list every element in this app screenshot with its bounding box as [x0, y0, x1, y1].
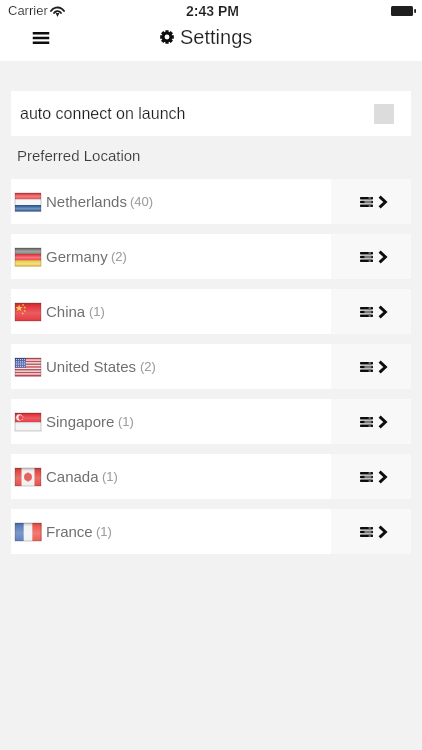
staticText: Germany — [46, 248, 108, 265]
staticText: Netherlands — [46, 193, 127, 210]
button[interactable]: auto connect on launch — [11, 91, 411, 136]
button[interactable]: Show servers in France — [331, 509, 411, 554]
staticText: Preferred Location — [17, 147, 141, 164]
staticText: Carrier — [8, 3, 48, 18]
button[interactable]: Menu — [18, 21, 64, 55]
staticText: France — [46, 523, 93, 540]
button[interactable]: Show servers in Netherlands — [331, 179, 411, 224]
staticText: (1) — [118, 414, 134, 429]
staticText: Singapore — [46, 413, 115, 430]
staticText: Canada — [46, 468, 99, 485]
button[interactable]: Singapore — [11, 399, 331, 444]
button[interactable]: United States — [11, 344, 331, 389]
button[interactable]: China — [11, 289, 331, 334]
staticText: (2) — [140, 359, 156, 374]
staticText: (2) — [111, 249, 127, 264]
staticText: (1) — [102, 469, 118, 484]
staticText: (1) — [89, 304, 105, 319]
button[interactable]: Netherlands — [11, 179, 331, 224]
button[interactable]: France — [11, 509, 331, 554]
staticText: (1) — [96, 524, 112, 539]
button[interactable]: Show servers in China — [331, 289, 411, 334]
staticText: (40) — [130, 194, 154, 209]
button[interactable]: Germany — [11, 234, 331, 279]
staticText: China — [46, 303, 86, 320]
button[interactable]: Canada — [11, 454, 331, 499]
button[interactable]: Show servers in United States — [331, 344, 411, 389]
button[interactable]: Show servers in Canada — [331, 454, 411, 499]
button[interactable]: Show servers in Singapore — [331, 399, 411, 444]
staticText: United States — [46, 358, 137, 375]
button[interactable]: Show servers in Germany — [331, 234, 411, 279]
staticText: Settings — [180, 26, 253, 48]
staticText: 2:43 PM — [186, 3, 239, 19]
staticText: auto connect on launch — [20, 105, 186, 123]
